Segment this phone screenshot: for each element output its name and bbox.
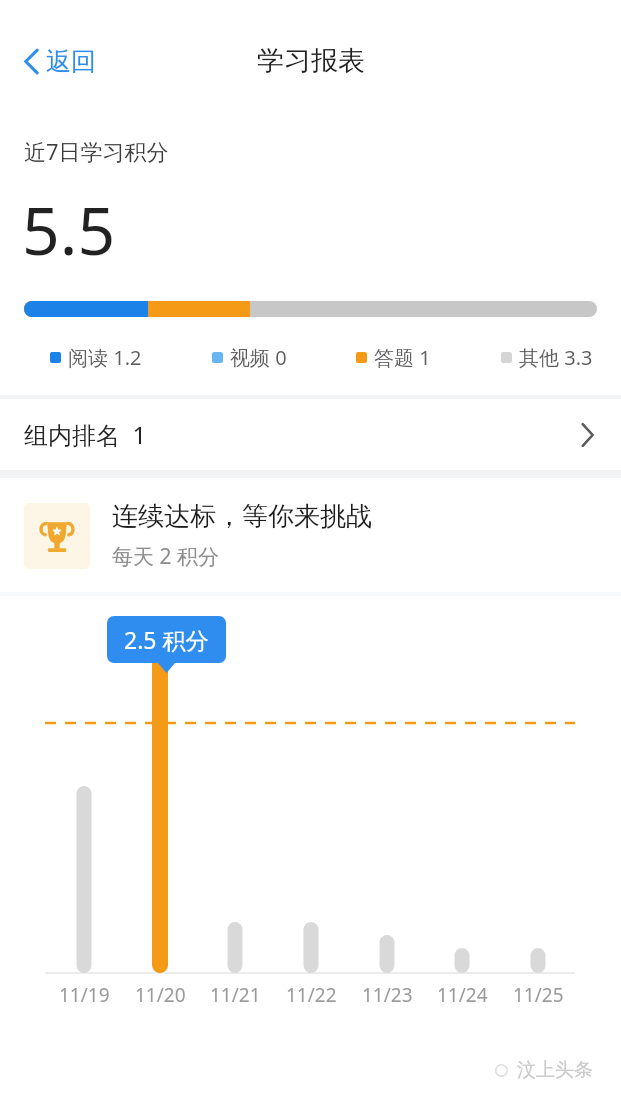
button[interactable]: 2.5 积分 bbox=[107, 616, 226, 663]
staticText: 组内排名 1 bbox=[24, 418, 147, 451]
button[interactable]: 阅读 1.2 bbox=[50, 344, 142, 371]
staticText: 11/24 bbox=[437, 982, 488, 1008]
staticText: 11/20 bbox=[135, 982, 186, 1008]
staticText: 返回 bbox=[46, 46, 96, 77]
staticText: 11/22 bbox=[286, 982, 337, 1008]
staticText: 汶上头条 bbox=[517, 1058, 593, 1082]
staticText: 其他 3.3 bbox=[519, 344, 593, 371]
staticText: 每天 2 积分 bbox=[112, 542, 219, 571]
button[interactable]: 组内排名 1 bbox=[0, 399, 621, 470]
staticText: 11/23 bbox=[362, 982, 413, 1008]
staticText: 11/25 bbox=[513, 982, 564, 1008]
button[interactable]: 视频 0 bbox=[212, 344, 287, 371]
staticText: 11/21 bbox=[210, 982, 261, 1008]
staticText: 近7日学习积分 bbox=[24, 136, 169, 166]
staticText: 答题 1 bbox=[374, 344, 431, 371]
staticText: 11/19 bbox=[59, 982, 110, 1008]
other: 查看组内排名 bbox=[580, 422, 595, 448]
button[interactable]: 其他 3.3 bbox=[501, 344, 593, 371]
staticText: 5.5 bbox=[22, 184, 116, 274]
staticText: 连续达标，等你来挑战 bbox=[112, 500, 372, 533]
staticText: 学习报表 bbox=[257, 44, 365, 78]
staticText: 2.5 积分 bbox=[124, 624, 209, 655]
button[interactable]: 连续达标，等你来挑战 bbox=[0, 478, 621, 592]
button[interactable]: 返回 bbox=[16, 40, 102, 83]
staticText: 视频 0 bbox=[230, 344, 287, 371]
staticText: 阅读 1.2 bbox=[68, 344, 142, 371]
button[interactable]: 答题 1 bbox=[356, 344, 431, 371]
